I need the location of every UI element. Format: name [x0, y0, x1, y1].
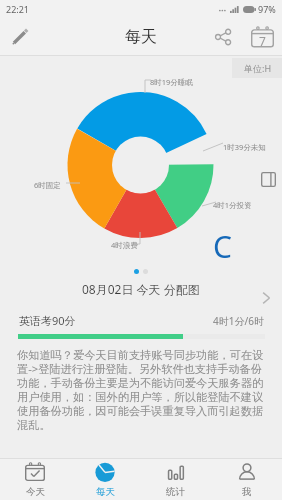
staticText: 英语考90分: [19, 313, 76, 328]
staticText: 1时39分未知: [223, 142, 266, 152]
staticText: 今天: [26, 486, 45, 498]
staticText: 08月02日 今天 分配图: [82, 281, 200, 297]
button[interactable]: Share: [207, 21, 239, 53]
button[interactable]: Toggle layout: [254, 165, 282, 193]
staticText: 4时浪费: [111, 240, 138, 250]
staticText: 4时1分/6时: [213, 314, 264, 328]
staticText: 4时1分投资: [213, 200, 252, 210]
staticText: 每天: [125, 27, 157, 47]
button[interactable]: 每天: [70, 459, 140, 500]
button[interactable]: 统计: [140, 459, 211, 500]
button[interactable]: Edit: [4, 21, 36, 53]
staticText: 7: [259, 33, 266, 49]
staticText: 统计: [166, 486, 185, 498]
button[interactable]: 我: [211, 459, 282, 500]
staticText: 单位:H: [244, 62, 272, 74]
button[interactable]: Calendar: [246, 21, 278, 53]
staticText: 97%: [258, 3, 276, 15]
button[interactable]: 今天: [0, 459, 70, 500]
button[interactable]: 英语考90分: [0, 313, 282, 339]
staticText: 我: [242, 486, 252, 498]
staticText: 6时固定: [34, 180, 61, 190]
staticText: 你知道吗？爱今天目前支持账号同步功能，可在设置->登陆进行注册登陆。另外软件也支…: [17, 348, 268, 433]
staticText: 8时19分睡眠: [150, 77, 193, 87]
staticText: 每天: [96, 486, 115, 498]
button[interactable]: Next: [250, 282, 282, 314]
button[interactable]: 单位:H: [232, 58, 282, 78]
staticText: 22:21: [6, 3, 30, 15]
staticText: C: [213, 226, 232, 267]
